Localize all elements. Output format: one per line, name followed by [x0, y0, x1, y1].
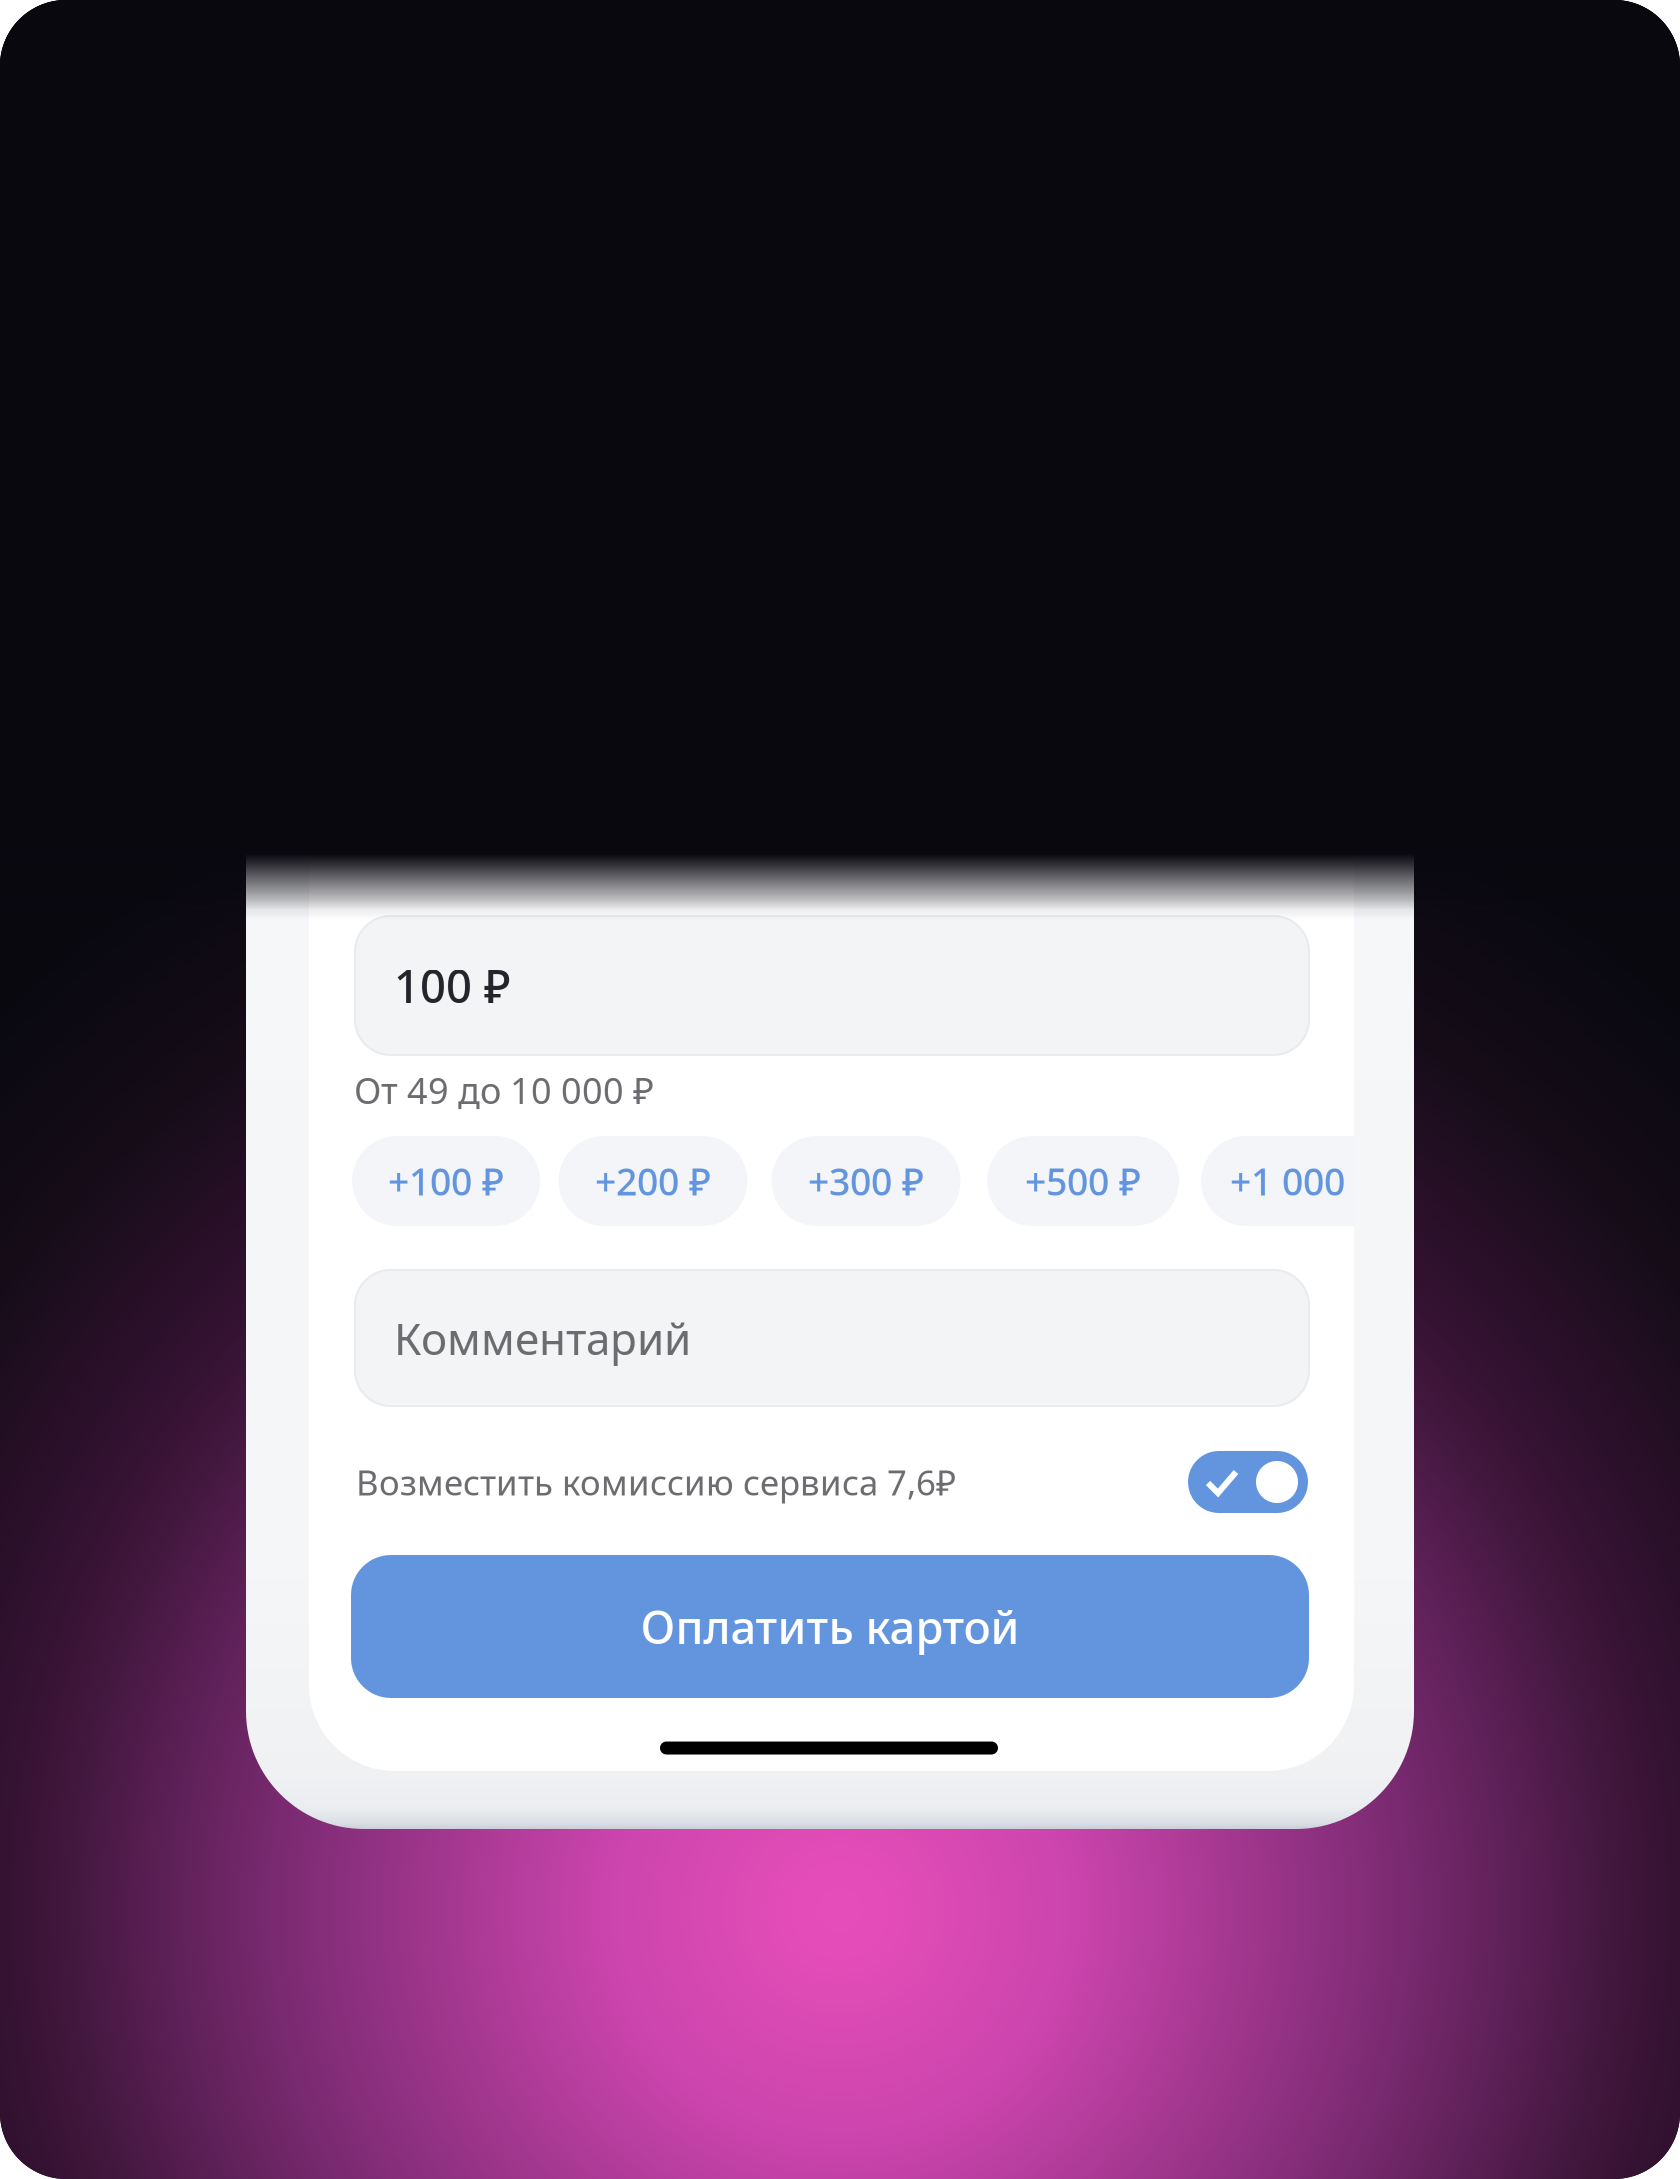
button[interactable]: Возместить комиссию сервиса — [1188, 1451, 1308, 1513]
staticText: +300 ₽ — [808, 1156, 924, 1206]
staticText: Оплатить картой — [640, 1596, 1019, 1657]
button[interactable]: +1 000 ₽ — [1201, 1136, 1463, 1226]
button[interactable]: +500 ₽ — [987, 1136, 1179, 1226]
button[interactable]: +100 ₽ — [352, 1136, 540, 1226]
button[interactable]: Оплатить картой — [351, 1555, 1309, 1698]
staticText: +200 ₽ — [595, 1156, 711, 1206]
staticText: От 49 до 10 000 ₽ — [354, 1066, 654, 1114]
staticText: +1 000 ₽ — [1230, 1156, 1377, 1206]
staticText: +100 ₽ — [388, 1156, 504, 1206]
staticText: +500 ₽ — [1025, 1156, 1141, 1206]
button[interactable]: +200 ₽ — [558, 1136, 747, 1226]
button[interactable]: +300 ₽ — [771, 1136, 960, 1226]
staticText: 100 ₽ — [394, 955, 511, 1016]
staticText: Возместить комиссию сервиса 7,6₽ — [356, 1459, 956, 1505]
staticText: Комментарий — [394, 1309, 691, 1367]
